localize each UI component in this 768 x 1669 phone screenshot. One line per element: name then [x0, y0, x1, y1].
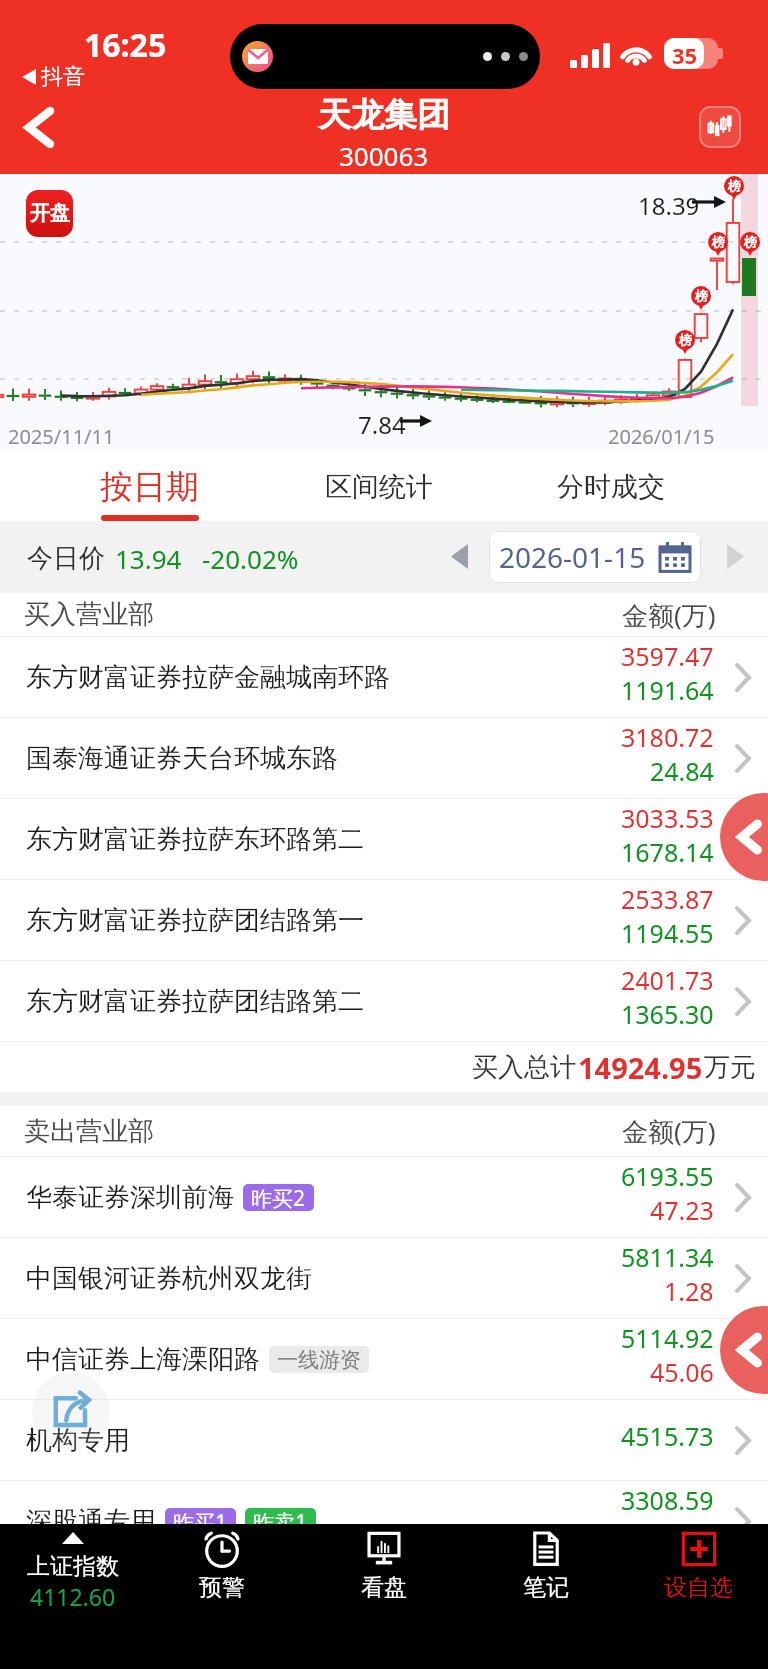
button[interactable]: 国泰海通证券天台环城东路	[0, 718, 768, 798]
button[interactable]: 预警	[149, 1524, 295, 1624]
button[interactable]: 下一天	[713, 534, 757, 578]
staticText: 1194.55	[621, 916, 714, 950]
staticText: 上证指数	[27, 1552, 119, 1581]
staticText: 5811.34	[621, 1240, 714, 1274]
button[interactable]: 上一天	[437, 534, 481, 578]
staticText: 3597.47	[621, 639, 714, 673]
staticText: 2026/01/15	[608, 423, 715, 450]
button[interactable]: 中国银河证券杭州双龙街	[0, 1238, 768, 1318]
button[interactable]: 东方财富证券拉萨东环路第二	[0, 799, 768, 879]
staticText: 1365.30	[621, 997, 714, 1031]
staticText: 买入总计	[472, 1051, 576, 1084]
staticText: 设自选	[664, 1573, 733, 1602]
button[interactable]: 东方财富证券拉萨金融城南环路	[0, 637, 768, 717]
button[interactable]: 笔记	[473, 1524, 619, 1624]
staticText: 按日期	[100, 466, 199, 508]
staticText: 开盘	[30, 201, 70, 226]
button[interactable]: 区间统计	[266, 451, 492, 521]
staticText: 4112.60	[30, 1581, 116, 1612]
staticText: 卖出营业部	[24, 1115, 154, 1148]
button[interactable]: Share	[32, 1372, 110, 1450]
staticText: 3308.59	[621, 1483, 714, 1517]
staticText: 国泰海通证券天台环城东路	[26, 742, 338, 775]
staticText: 抖音	[41, 63, 85, 91]
staticText: 1678.14	[621, 835, 714, 869]
staticText: 机构专用	[26, 1424, 130, 1457]
staticText: 2533.87	[621, 882, 714, 916]
staticText: 47.23	[650, 1193, 714, 1227]
staticText: 东方财富证券拉萨东环路第二	[26, 823, 364, 856]
staticText: 300063	[339, 138, 429, 173]
staticText: 3033.53	[621, 801, 714, 835]
button[interactable]: 深股通专用	[0, 1481, 768, 1561]
staticText: 1191.64	[621, 673, 714, 707]
button[interactable]: 中信证券上海溧阳路	[0, 1319, 768, 1399]
staticText: 榜	[744, 234, 757, 250]
staticText: 中信证券上海溧阳路	[26, 1343, 260, 1376]
staticText: 看盘	[361, 1573, 407, 1602]
staticText: 昨卖1	[253, 1508, 308, 1535]
staticText: 榜	[728, 178, 741, 194]
staticText: 东方财富证券拉萨团结路第一	[26, 904, 364, 937]
button[interactable]: 设自选	[625, 1524, 768, 1624]
staticText: 35	[672, 40, 698, 70]
staticText: 6193.55	[621, 1159, 714, 1193]
staticText: 45.06	[650, 1355, 714, 1389]
staticText: 16:25	[84, 23, 167, 67]
button[interactable]: Back	[8, 96, 70, 158]
staticText: 预警	[199, 1573, 245, 1602]
staticText: 金额(万)	[622, 1113, 716, 1149]
staticText: 东方财富证券拉萨团结路第二	[26, 985, 364, 1018]
staticText: 一线游资	[277, 1347, 361, 1373]
button[interactable]: 机构专用	[0, 1400, 768, 1480]
staticText: 3180.72	[621, 720, 714, 754]
staticText: -20.02%	[202, 541, 299, 576]
staticText: 2401.73	[621, 963, 714, 997]
staticText: 2025/11/11	[8, 423, 115, 450]
staticText: 18.39	[638, 189, 700, 222]
staticText: 84.07	[650, 1517, 714, 1551]
staticText: 2026-01-15	[499, 538, 646, 576]
button[interactable]: 华泰证券深圳前海	[0, 1157, 768, 1237]
staticText: 金额(万)	[622, 597, 716, 633]
staticText: 榜	[695, 288, 708, 304]
staticText: 14924.95	[578, 1048, 703, 1087]
staticText: 深股通专用	[26, 1505, 156, 1538]
staticText: 今日价	[27, 542, 105, 575]
staticText: 昨买2	[251, 1184, 306, 1211]
staticText: 昨买1	[173, 1508, 228, 1535]
button[interactable]: 分时成交	[497, 451, 724, 521]
button[interactable]: 上证指数	[0, 1524, 146, 1624]
staticText: 1.28	[664, 1274, 714, 1308]
button[interactable]: 东方财富证券拉萨团结路第一	[0, 880, 768, 960]
button[interactable]: 东方财富证券拉萨团结路第二	[0, 961, 768, 1041]
button[interactable]: 2026-01-15	[489, 531, 701, 583]
staticText: 4515.73	[621, 1419, 714, 1453]
staticText: 榜	[679, 332, 692, 348]
staticText: 榜	[712, 234, 725, 250]
button[interactable]: 收起	[720, 1306, 768, 1394]
staticText: 分时成交	[557, 470, 665, 504]
staticText: 买入营业部	[24, 598, 154, 631]
button[interactable]: 按日期	[26, 451, 273, 521]
button[interactable]: 看盘	[311, 1524, 457, 1624]
button[interactable]: 收起	[720, 793, 768, 881]
staticText: 华泰证券深圳前海	[26, 1181, 234, 1214]
staticText: 5114.92	[621, 1321, 714, 1355]
staticText: 笔记	[523, 1573, 569, 1602]
staticText: 万元	[704, 1051, 756, 1084]
staticText: 7.84	[358, 408, 406, 441]
staticText: 13.94	[115, 541, 182, 576]
staticText: 区间统计	[325, 470, 433, 504]
staticText: 中国银河证券杭州双龙街	[26, 1262, 312, 1295]
staticText: 东方财富证券拉萨金融城南环路	[26, 661, 390, 694]
button[interactable]: K线图	[699, 106, 741, 148]
staticText: 天龙集团	[318, 94, 450, 136]
staticText: 24.84	[650, 754, 714, 788]
